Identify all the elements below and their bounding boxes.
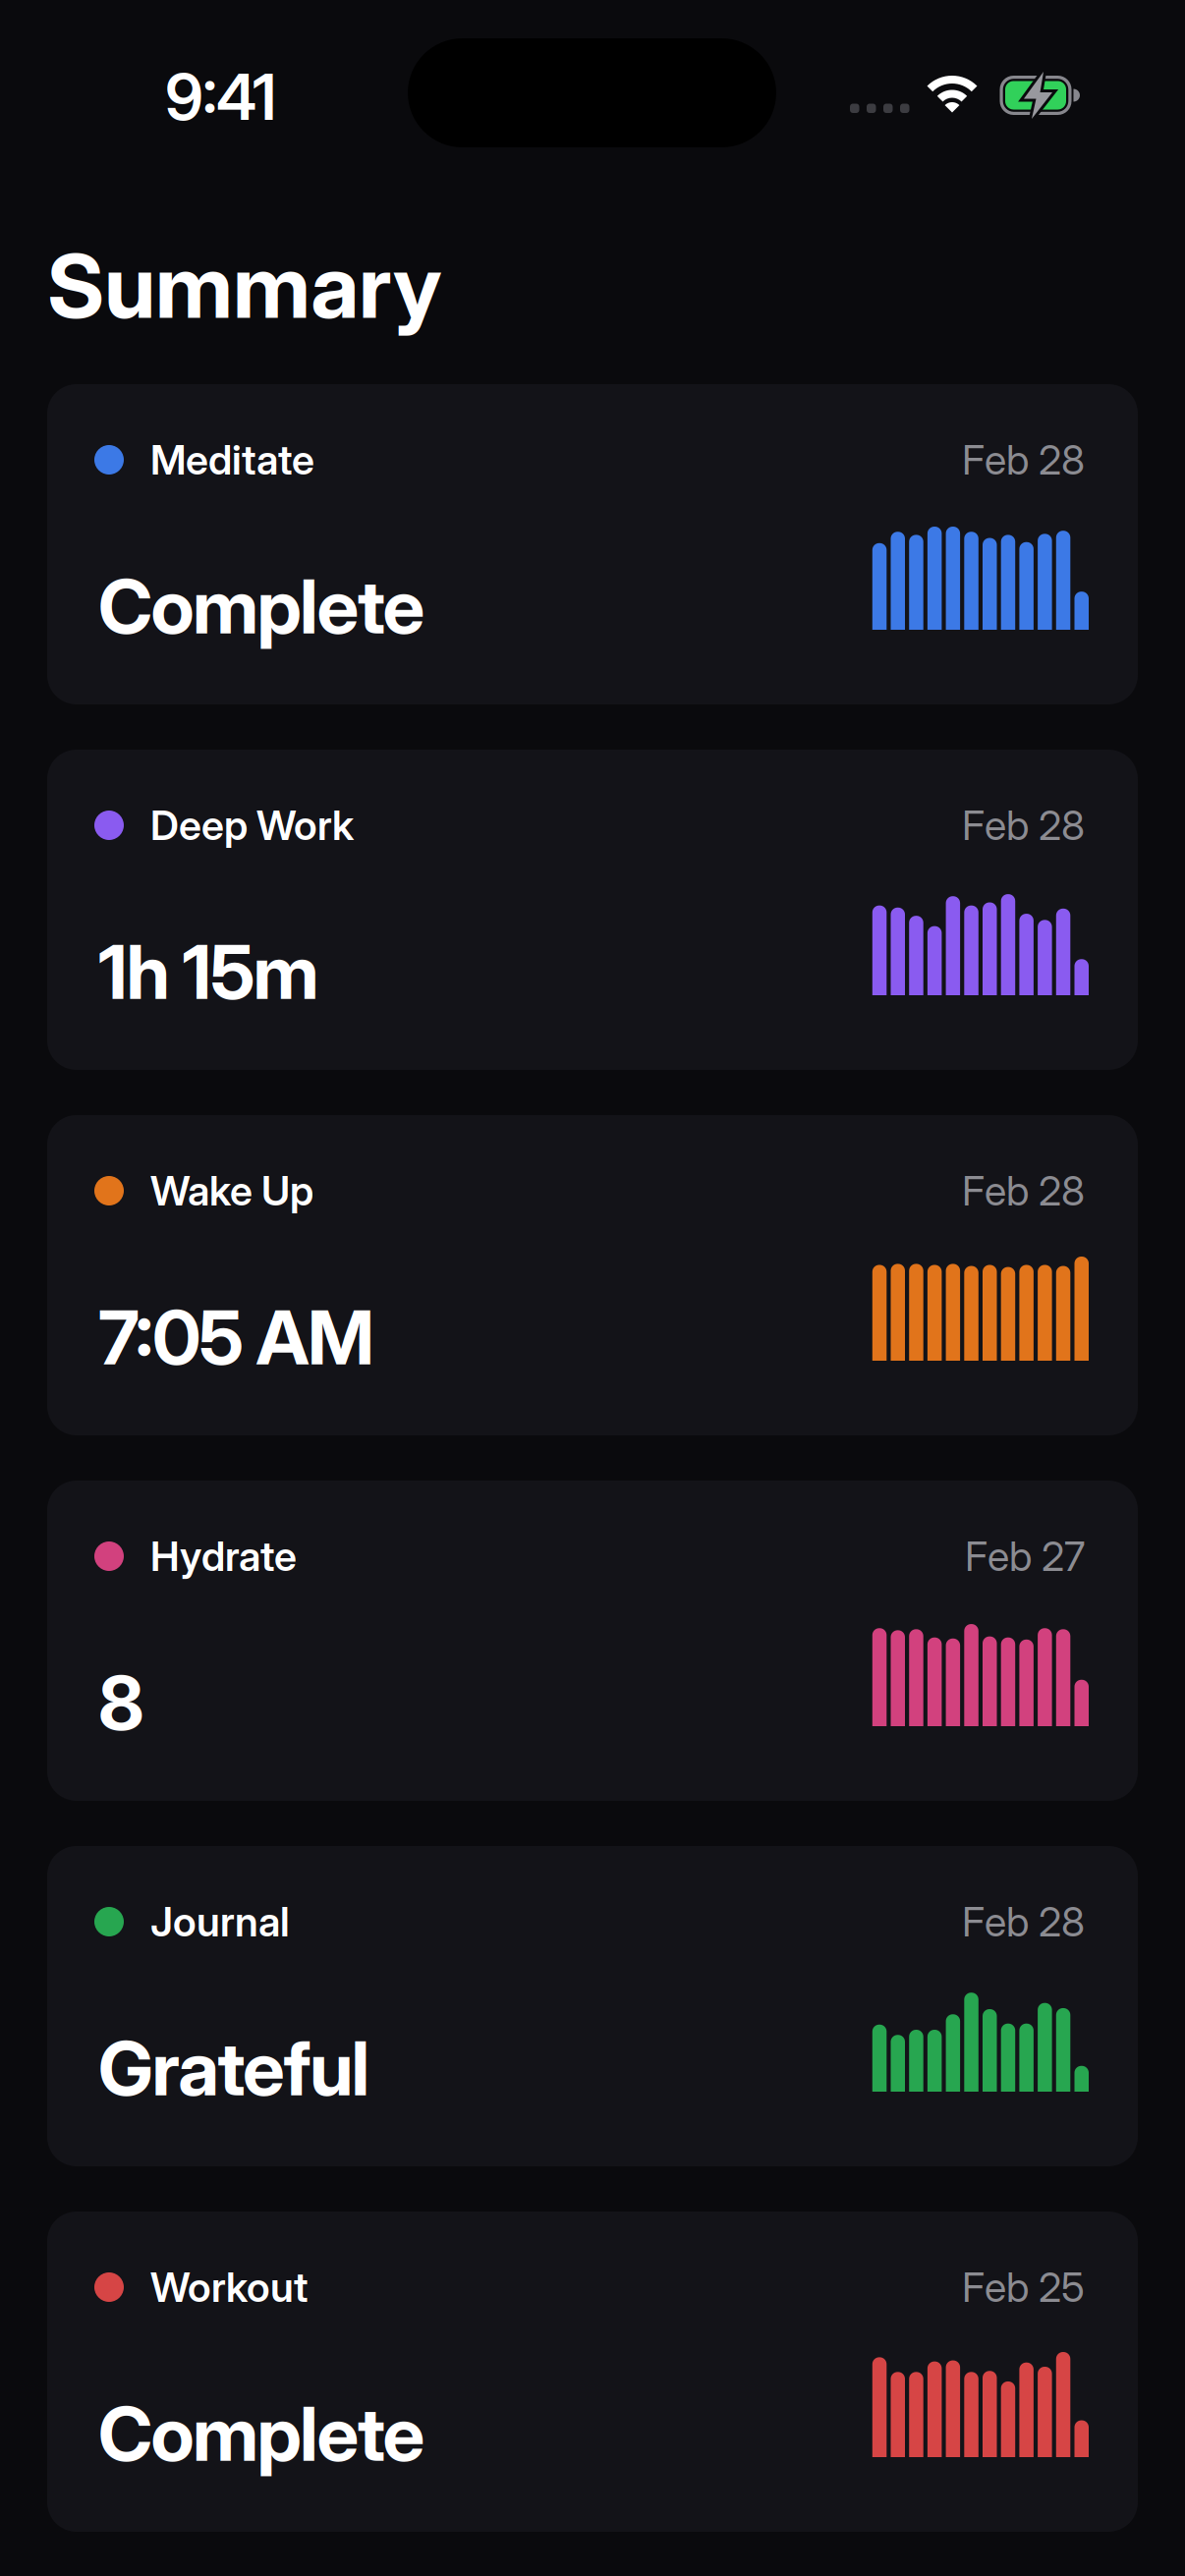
staticText: 9:41 xyxy=(165,59,276,135)
staticText: 8 xyxy=(98,1657,144,1748)
staticText: Complete xyxy=(98,561,425,651)
button[interactable]: Wake Up xyxy=(47,1115,1138,1435)
staticText: Hydrate xyxy=(150,1532,297,1581)
button[interactable]: Journal xyxy=(47,1846,1138,2166)
staticText: Journal xyxy=(150,1897,290,1946)
staticText: Feb 27 xyxy=(965,1532,1085,1581)
staticText: Summary xyxy=(47,233,441,339)
staticText: Feb 28 xyxy=(962,1897,1085,1946)
staticText: Feb 28 xyxy=(962,801,1085,850)
button[interactable]: Workout xyxy=(47,2212,1138,2532)
staticText: 1h 15m xyxy=(98,926,319,1017)
button[interactable]: Meditate xyxy=(47,384,1138,704)
staticText: Deep Work xyxy=(150,801,354,850)
staticText: Complete xyxy=(98,2388,425,2479)
staticText: Meditate xyxy=(150,435,314,484)
staticText: 7:05 AM xyxy=(98,1292,374,1382)
staticText: Workout xyxy=(150,2263,308,2312)
button[interactable]: Deep Work xyxy=(47,750,1138,1070)
staticText: Grateful xyxy=(98,2023,370,2113)
staticText: Wake Up xyxy=(150,1166,313,1215)
button[interactable]: Hydrate xyxy=(47,1481,1138,1801)
staticText: Feb 25 xyxy=(962,2263,1085,2312)
staticText: Feb 28 xyxy=(962,435,1085,484)
staticText: Feb 28 xyxy=(962,1166,1085,1215)
